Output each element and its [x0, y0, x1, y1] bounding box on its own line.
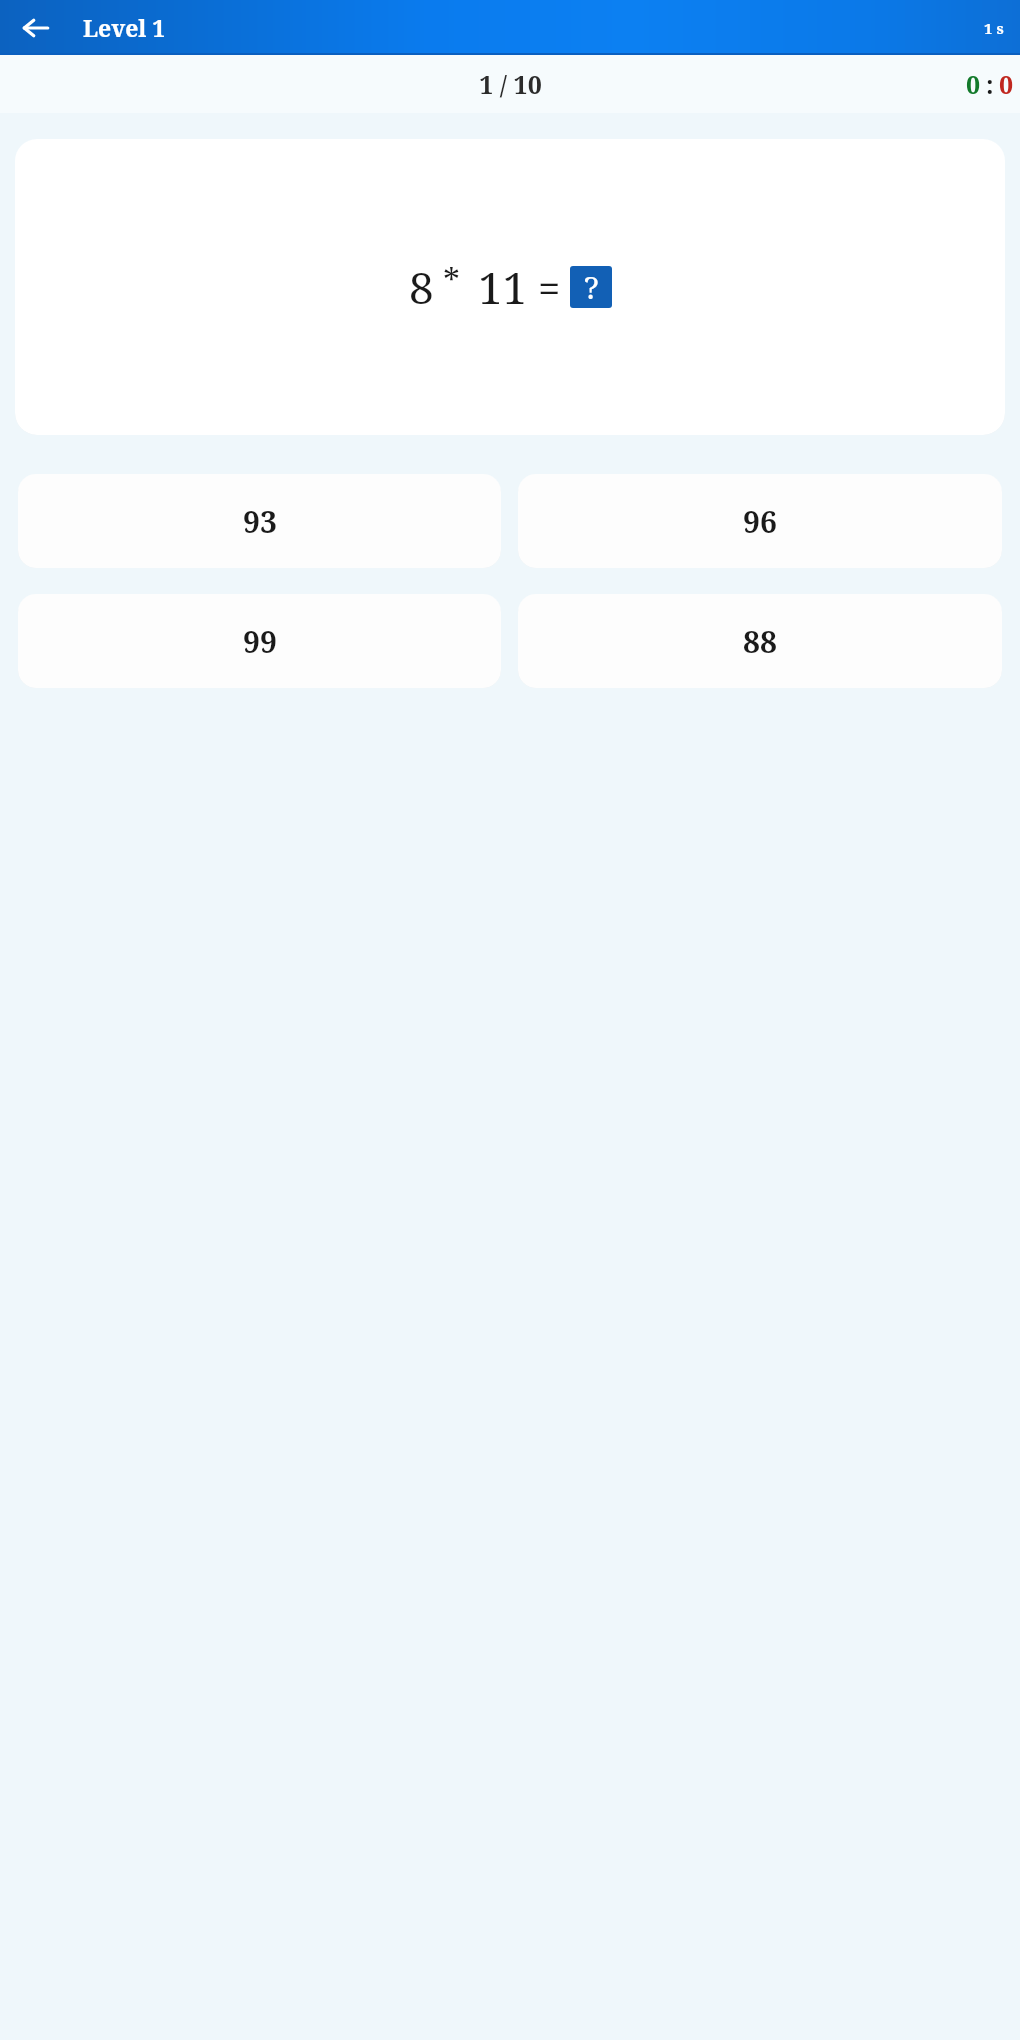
- staticText: 1 s: [984, 18, 1004, 38]
- staticText: 11: [478, 257, 528, 317]
- button[interactable]: 93: [18, 474, 501, 568]
- staticText: 0: [999, 67, 1014, 101]
- staticText: 99: [243, 621, 277, 662]
- staticText: 0: [966, 67, 981, 101]
- staticText: 96: [743, 501, 777, 542]
- staticText: 93: [243, 501, 277, 542]
- staticText: =: [538, 260, 561, 314]
- button[interactable]: 96: [518, 474, 1002, 568]
- button[interactable]: 99: [18, 594, 501, 688]
- staticText: 1 / 10: [479, 67, 542, 101]
- button[interactable]: 8: [15, 139, 1005, 435]
- button[interactable]: 88: [518, 594, 1002, 688]
- staticText: *: [443, 257, 460, 303]
- staticText: 88: [743, 621, 777, 662]
- staticText: 8: [409, 257, 434, 317]
- staticText: ?: [584, 266, 599, 308]
- staticText: Level 1: [83, 12, 166, 43]
- staticText: :: [986, 67, 994, 101]
- button[interactable]: Back: [16, 8, 56, 48]
